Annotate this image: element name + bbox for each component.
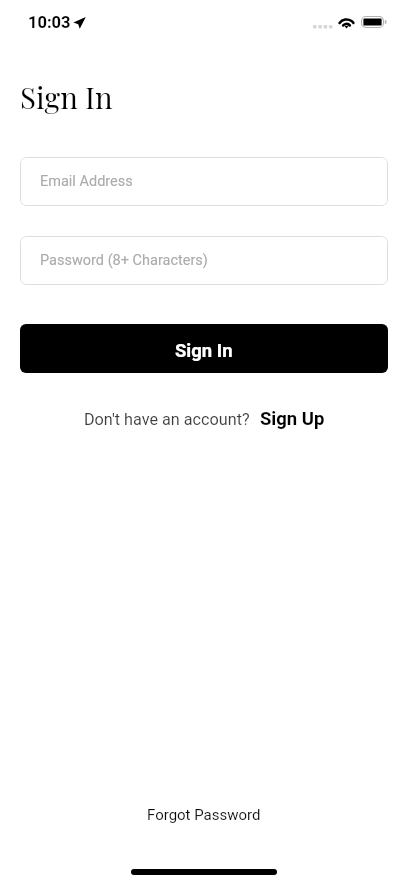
button[interactable]: Sign Up: [257, 404, 328, 434]
staticText: Don't have an account?: [84, 410, 250, 429]
staticText: Sign In: [175, 340, 233, 362]
staticText: Email Address: [40, 173, 133, 190]
button[interactable]: Sign In: [20, 324, 388, 373]
staticText: Sign Up: [260, 408, 325, 430]
staticText: Password (8+ Characters): [40, 252, 208, 269]
staticText: Sign In: [20, 77, 113, 116]
button[interactable]: Password (8+ Characters): [20, 236, 388, 285]
staticText: Forgot Password: [147, 806, 261, 824]
button[interactable]: Email Address: [20, 157, 388, 206]
button[interactable]: Forgot Password: [135, 800, 273, 830]
staticText: 10:03: [28, 13, 71, 32]
